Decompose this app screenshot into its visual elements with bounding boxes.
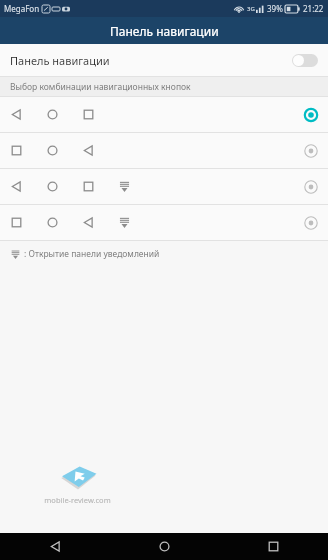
- button[interactable]: [0, 205, 328, 240]
- staticText: 3G: [247, 5, 255, 13]
- staticText: 21:22: [303, 3, 324, 14]
- button[interactable]: Панель навигации: [0, 44, 328, 76]
- button[interactable]: [0, 133, 328, 168]
- button[interactable]: [0, 169, 328, 204]
- button[interactable]: Navigation bar toggle: [292, 54, 318, 67]
- button[interactable]: Back: [0, 533, 110, 560]
- staticText: Выбор комбинации навигационных кнопок: [10, 81, 191, 93]
- staticText: Панель навигации: [110, 23, 219, 39]
- button[interactable]: Recent apps: [219, 533, 328, 560]
- staticText: : Открытие панели уведомлений: [24, 248, 160, 260]
- staticText: mobile-review.com: [44, 495, 111, 505]
- staticText: Панель навигации: [10, 53, 110, 68]
- staticText: 39%: [267, 3, 283, 14]
- button[interactable]: Home: [110, 533, 219, 560]
- staticText: MegaFon: [4, 3, 40, 14]
- button[interactable]: [0, 97, 328, 132]
